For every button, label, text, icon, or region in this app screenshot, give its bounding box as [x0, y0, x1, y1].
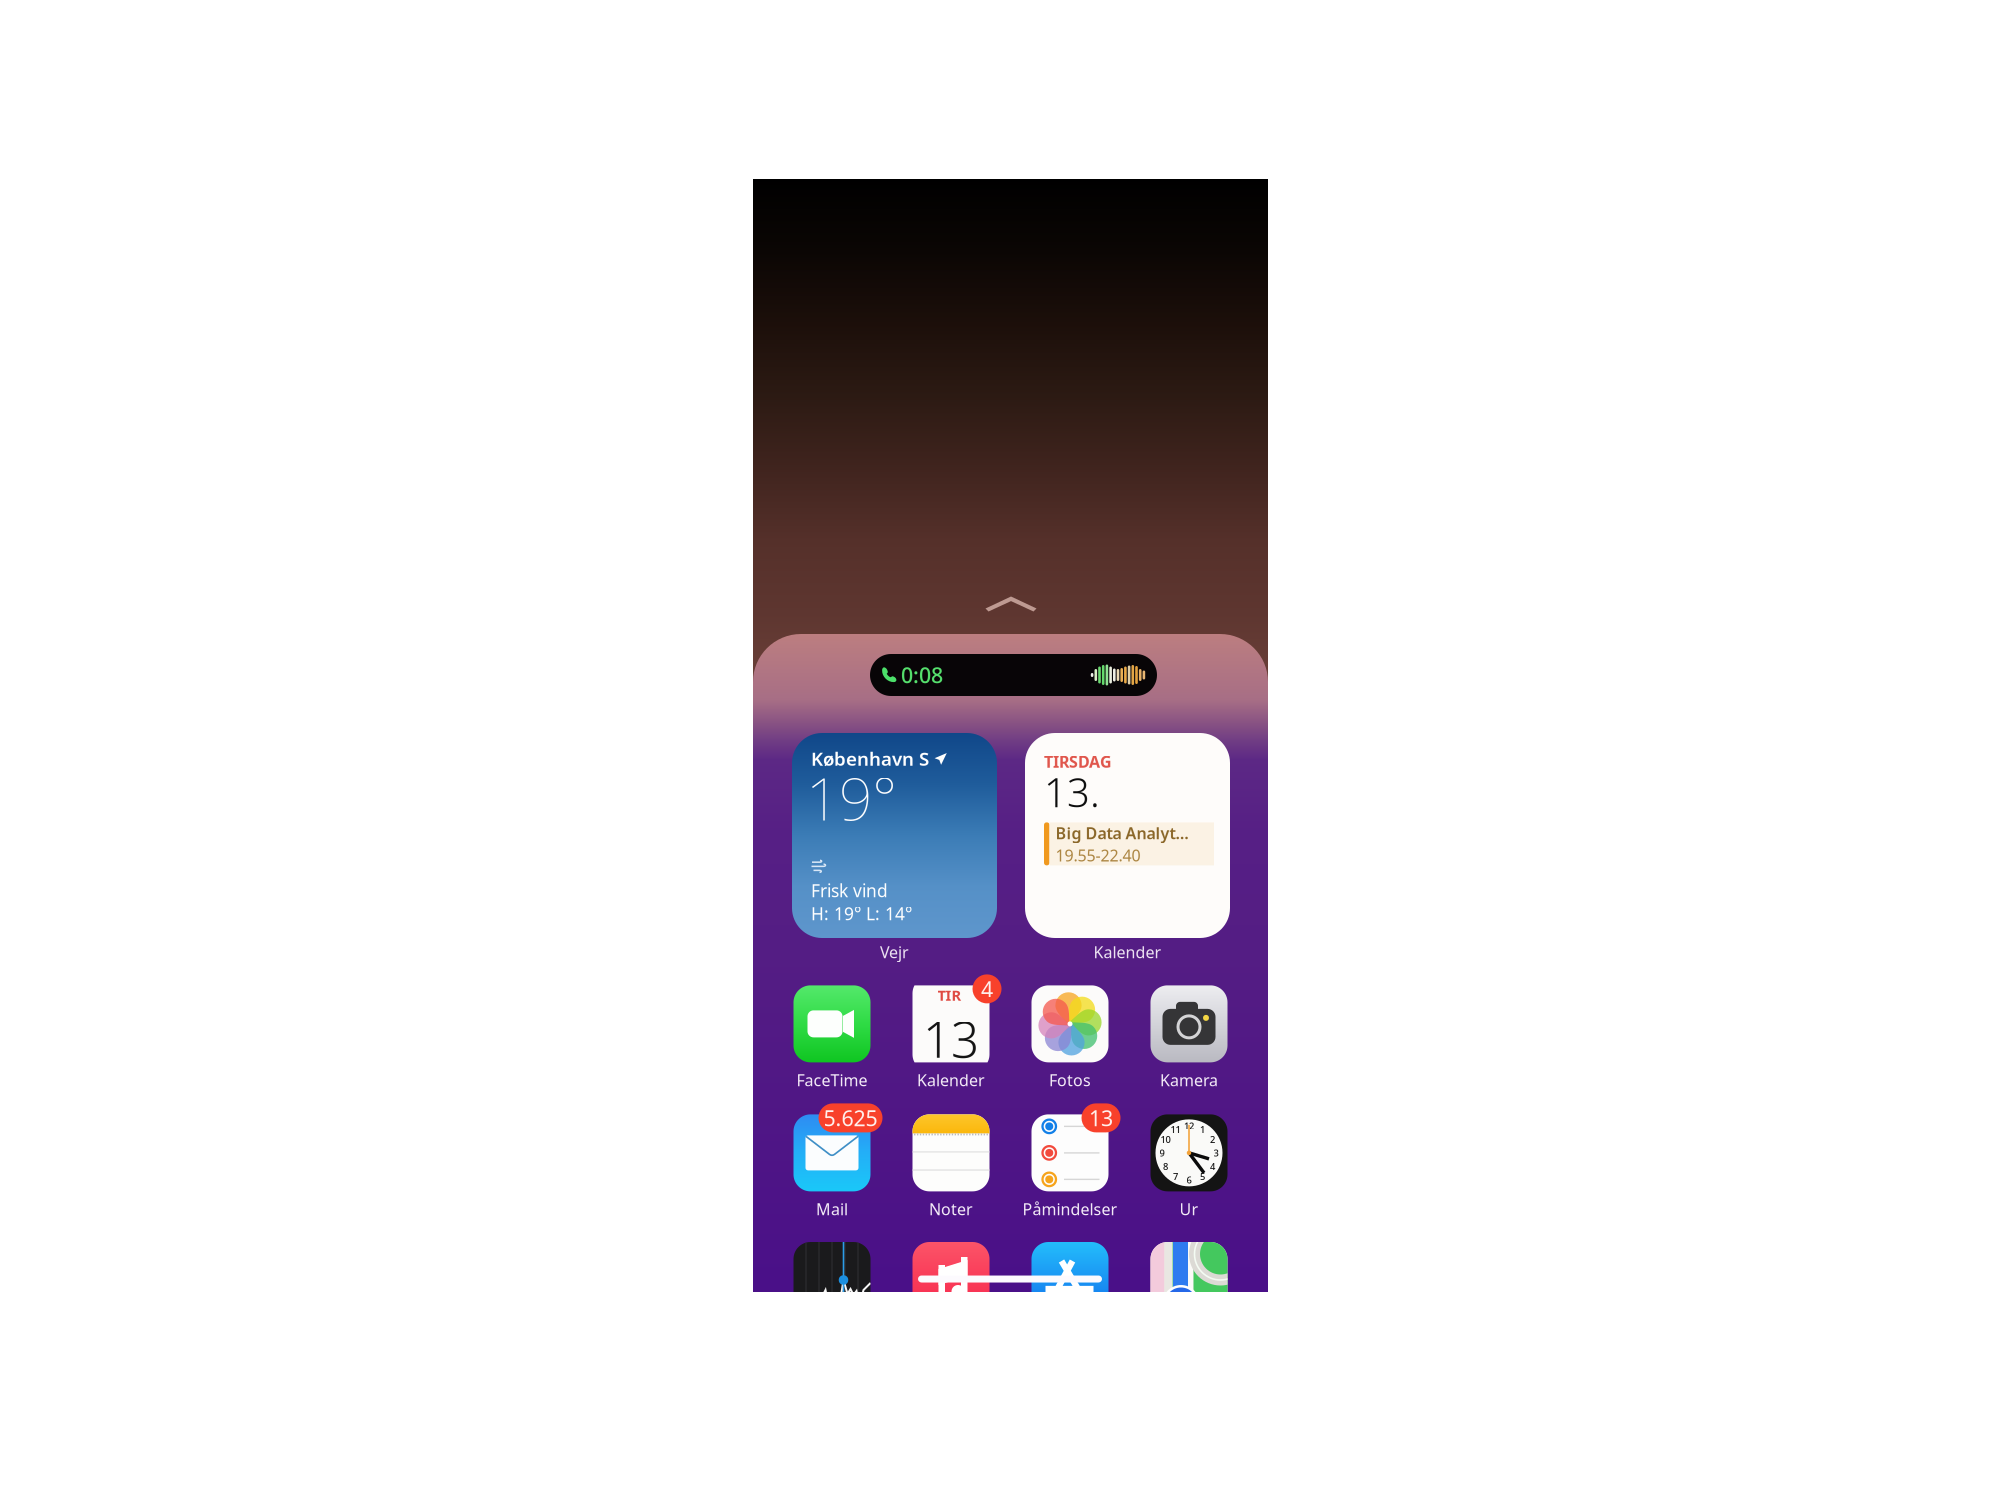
staticText: 5.625 — [823, 1104, 877, 1132]
staticText: 12 — [1184, 1120, 1194, 1132]
staticText: 7 — [1173, 1170, 1178, 1183]
staticText: København S — [811, 746, 929, 771]
staticText: Vejr — [880, 941, 909, 963]
staticText: Påmindelser — [1022, 1198, 1117, 1220]
staticText: Fotos — [1049, 1069, 1091, 1091]
button[interactable]: FaceTime — [772, 985, 891, 1091]
button[interactable]: 12 — [1129, 1114, 1248, 1220]
staticText: 19.55-22.40 — [1055, 845, 1140, 866]
staticText: 13. — [1044, 765, 1100, 818]
button[interactable]: Fotos — [1010, 985, 1129, 1091]
staticText: 13 — [1089, 1104, 1113, 1132]
staticText: 9 — [1159, 1147, 1164, 1159]
staticText: 19° — [806, 759, 897, 837]
button[interactable]: App Store — [1031, 1242, 1108, 1319]
staticText: 3 — [1213, 1147, 1218, 1159]
staticText: 11 — [1170, 1123, 1180, 1136]
staticText: TIR — [937, 985, 961, 1005]
staticText: 5 — [1200, 1170, 1205, 1183]
button[interactable]: Musik — [912, 1242, 989, 1319]
button[interactable]: TIR — [891, 985, 1010, 1091]
staticText: Ur — [1179, 1198, 1198, 1220]
staticText: Kalender — [1093, 941, 1161, 963]
button[interactable]: 5.625 — [772, 1114, 891, 1220]
staticText: 8 — [1163, 1160, 1168, 1173]
button[interactable]: Aktier — [793, 1242, 870, 1319]
staticText: H: 19° L: 14° — [811, 902, 912, 925]
staticText: Kalender — [917, 1069, 985, 1091]
button[interactable]: Kort — [1150, 1242, 1227, 1319]
staticText: Noter — [929, 1198, 973, 1220]
button[interactable]: 13 — [1010, 1114, 1129, 1220]
staticText: TIRSDAG — [1044, 751, 1112, 772]
staticText: 4 — [981, 975, 993, 1003]
staticText: 10 — [1160, 1133, 1170, 1146]
staticText: 0:08 — [901, 661, 943, 689]
staticText: Big Data Analyt… — [1055, 822, 1188, 844]
staticText: Mail — [816, 1198, 848, 1220]
button[interactable]: Kamera — [1129, 985, 1248, 1091]
staticText: 4 — [1210, 1160, 1215, 1173]
staticText: 13 — [923, 1006, 979, 1071]
staticText: Frisk vind — [811, 879, 888, 902]
staticText: 1 — [1200, 1123, 1205, 1136]
staticText: Kamera — [1160, 1069, 1218, 1091]
staticText: FaceTime — [796, 1069, 867, 1091]
staticText: 6 — [1186, 1174, 1191, 1186]
staticText: 2 — [1210, 1133, 1215, 1146]
button[interactable]: Noter — [891, 1114, 1010, 1220]
